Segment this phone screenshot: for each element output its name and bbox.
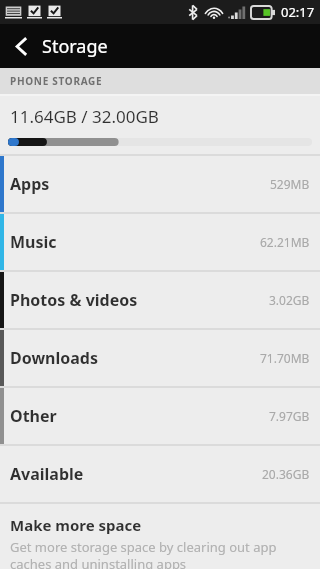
staticText: PHONE STORAGE: [10, 74, 103, 88]
staticText: 02:17: [281, 3, 315, 21]
button[interactable]: Make more space: [0, 504, 320, 569]
button[interactable]: Available: [0, 446, 320, 502]
button[interactable]: Music: [0, 214, 320, 270]
button[interactable]: Downloads: [0, 330, 320, 386]
staticText: 62.21MB: [260, 234, 310, 250]
staticText: Make more space: [10, 515, 142, 535]
staticText: Music: [10, 231, 57, 253]
staticText: Get more storage space by clearing out a…: [10, 538, 308, 569]
staticText: Storage: [42, 34, 108, 59]
staticText: Downloads: [10, 347, 98, 369]
staticText: Available: [10, 463, 84, 485]
staticText: Photos & videos: [10, 289, 138, 311]
button[interactable]: Apps: [0, 156, 320, 212]
staticText: 7.97GB: [269, 408, 310, 424]
staticText: 11.64GB / 32.00GB: [10, 105, 159, 128]
staticText: 71.70MB: [260, 350, 310, 366]
staticText: 529MB: [270, 176, 310, 192]
button[interactable]: Back: [0, 24, 42, 68]
staticText: Other: [10, 405, 57, 427]
staticText: 20.36GB: [262, 466, 310, 482]
button[interactable]: Photos & videos: [0, 272, 320, 328]
staticText: Apps: [10, 173, 50, 195]
button[interactable]: Other: [0, 388, 320, 444]
staticText: 3.02GB: [269, 292, 310, 308]
